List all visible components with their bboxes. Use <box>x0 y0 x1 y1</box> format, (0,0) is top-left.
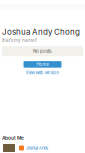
button[interactable]: View web version <box>25 70 59 75</box>
staticText: Joshua Andy Chong <box>2 27 80 37</box>
staticText: No posts. <box>33 48 52 54</box>
staticText: Joshua Andy <box>26 146 48 150</box>
staticText: Home <box>36 62 48 67</box>
button[interactable]: Joshua Andy <box>19 145 48 150</box>
staticText: View web version <box>25 70 59 75</box>
staticText: that's my name!! <box>2 38 37 43</box>
staticText: About Me <box>2 135 24 141</box>
button[interactable]: Home <box>23 61 61 68</box>
